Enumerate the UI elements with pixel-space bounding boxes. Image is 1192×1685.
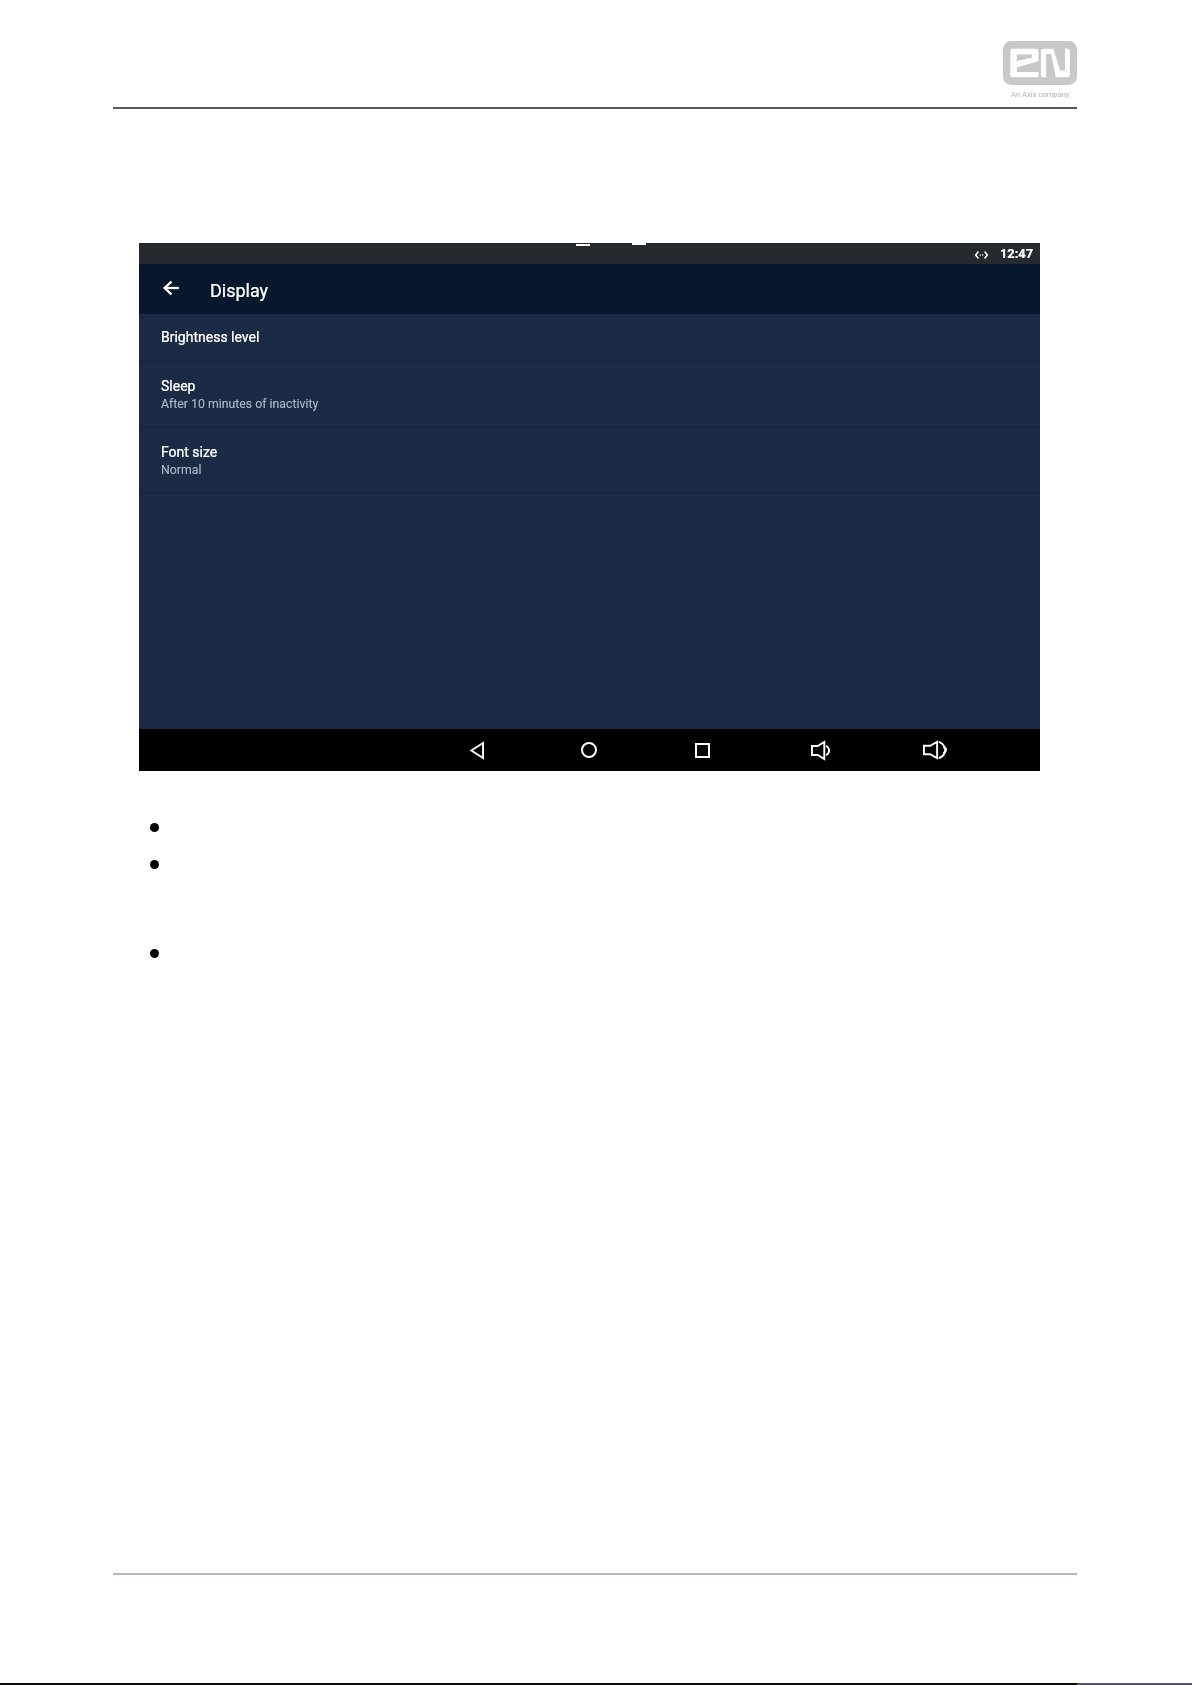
- button[interactable]: Sleep: [139, 362, 1040, 426]
- staticText: Normal: [161, 463, 202, 477]
- button[interactable]: Recents: [684, 729, 720, 771]
- staticText: Brightness level: [161, 329, 260, 345]
- staticText: Display: [210, 280, 269, 301]
- button[interactable]: Brightness level: [139, 314, 1040, 360]
- button[interactable]: Back: [459, 729, 495, 771]
- staticText: 12:47: [1000, 246, 1033, 261]
- button[interactable]: Volume up: [916, 729, 952, 771]
- button[interactable]: Volume down: [802, 729, 838, 771]
- button[interactable]: Font size: [139, 428, 1040, 492]
- button[interactable]: Back: [153, 270, 189, 306]
- staticText: After 10 minutes of inactivity: [161, 397, 319, 411]
- button[interactable]: Home: [571, 729, 607, 771]
- staticText: Font size: [161, 444, 218, 460]
- staticText: Sleep: [161, 378, 196, 394]
- staticText: An Axis company: [1011, 90, 1070, 99]
